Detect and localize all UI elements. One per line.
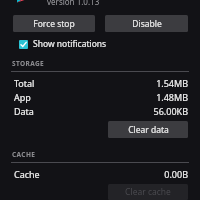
button[interactable]: Cache — [0, 167, 200, 181]
button[interactable]: Force stop — [13, 15, 95, 32]
staticText: Clear cache — [125, 186, 171, 198]
staticText: Data — [14, 105, 34, 117]
staticText: STORAGE — [12, 59, 45, 68]
button[interactable]: Data — [0, 104, 200, 118]
staticText: 56.00KB — [153, 105, 188, 117]
other: App icon — [15, 0, 32, 3]
button[interactable]: Clear cache — [108, 184, 188, 200]
staticText: Show notifications — [33, 38, 107, 50]
button[interactable]: Show notifications — [0, 37, 200, 51]
staticText: Total — [14, 77, 35, 89]
staticText: 1.54MB — [156, 77, 188, 89]
staticText: Cache — [14, 168, 40, 180]
staticText: version 1.0.13 — [47, 0, 100, 7]
staticText: CACHE — [12, 150, 36, 159]
button[interactable]: Disable — [105, 15, 188, 32]
staticText: Force stop — [33, 18, 75, 30]
button[interactable]: App — [0, 90, 200, 104]
staticText: Disable — [132, 18, 162, 30]
button[interactable]: Clear data — [108, 121, 188, 138]
staticText: App — [14, 91, 31, 103]
button[interactable]: Total — [0, 76, 200, 90]
staticText: Clear data — [128, 124, 169, 136]
staticText: 1.48MB — [156, 91, 188, 103]
staticText: 0.00B — [164, 168, 188, 180]
